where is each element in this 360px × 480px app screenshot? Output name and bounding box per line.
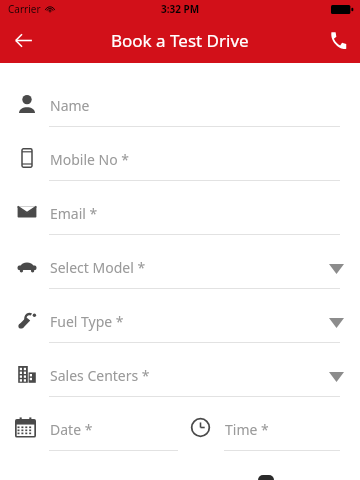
- button[interactable]: Select Model *: [0, 241, 360, 295]
- button[interactable]: Date *: [0, 403, 180, 457]
- staticText: Fuel Type *: [50, 312, 124, 331]
- button[interactable]: Sales Centers *: [0, 349, 360, 403]
- staticText: Date *: [50, 420, 93, 439]
- button[interactable]: Name: [0, 79, 360, 133]
- button[interactable]: Mobile No *: [0, 133, 360, 187]
- staticText: Email *: [50, 204, 98, 223]
- staticText: 3:32 PM: [161, 2, 200, 16]
- button[interactable]: Email *: [0, 187, 360, 241]
- staticText: Sales Centers *: [50, 366, 150, 385]
- staticText: Book a Test Drive: [111, 29, 249, 52]
- staticText: Time *: [225, 420, 269, 439]
- staticText: Name: [50, 96, 90, 115]
- staticText: Carrier: [8, 2, 41, 16]
- button[interactable]: Submit: [258, 475, 274, 480]
- button[interactable]: Time *: [186, 403, 360, 457]
- button[interactable]: Back: [0, 18, 46, 63]
- staticText: Select Model *: [50, 258, 146, 277]
- button[interactable]: Call: [314, 18, 360, 63]
- staticText: Mobile No *: [50, 150, 130, 169]
- button[interactable]: Fuel Type *: [0, 295, 360, 349]
